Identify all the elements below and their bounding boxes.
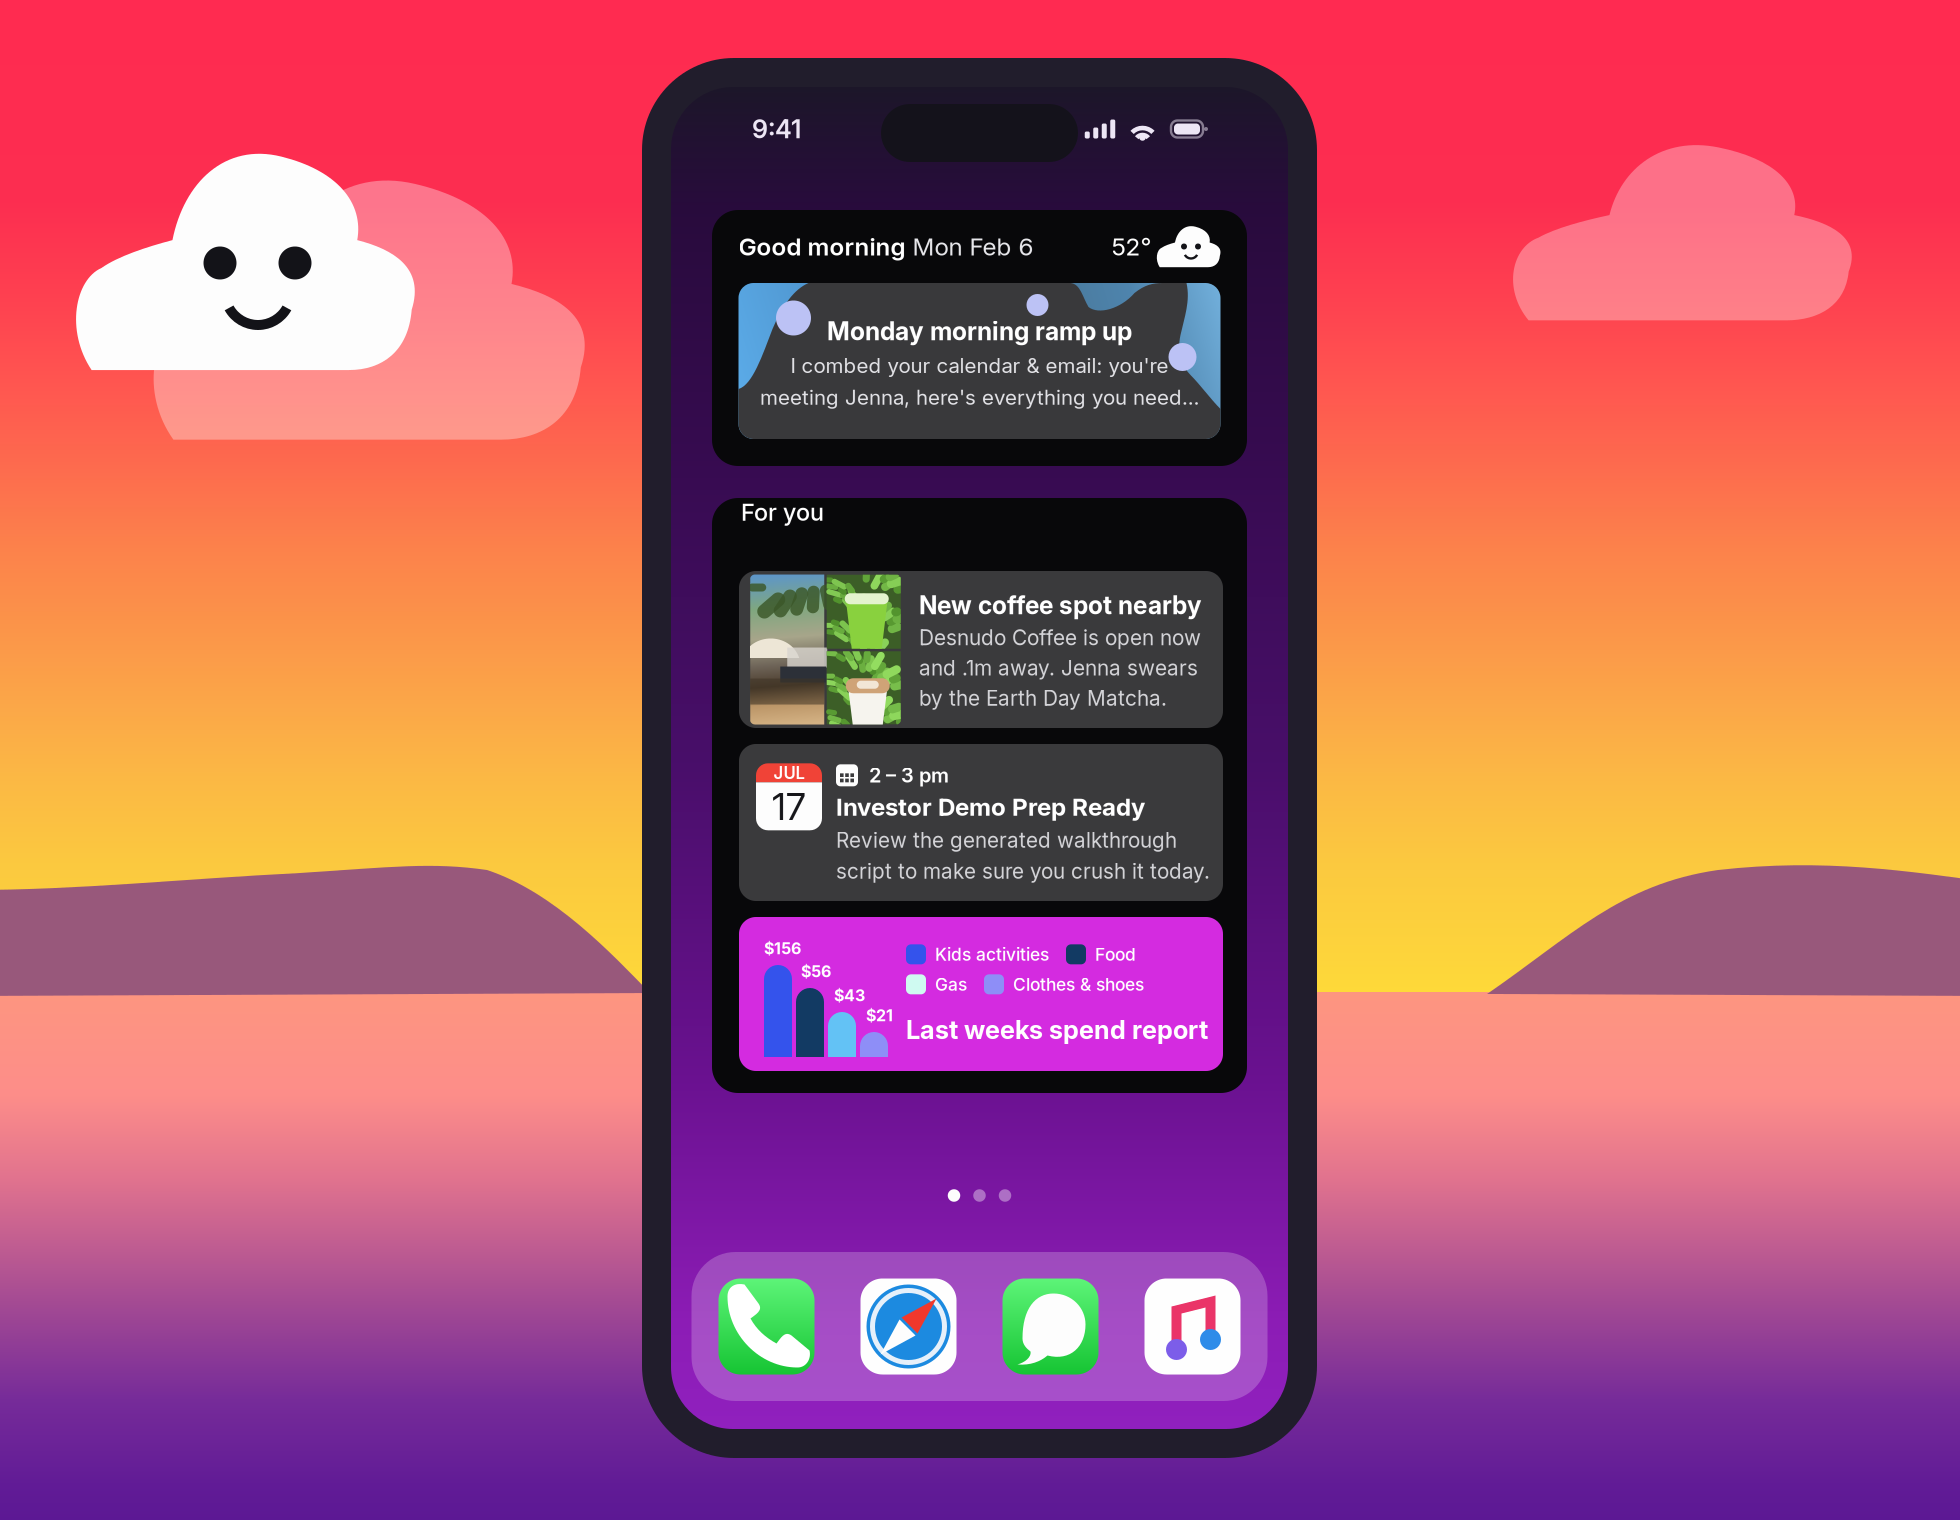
button[interactable]: New coffee spot nearby xyxy=(739,571,1223,728)
staticText: $21 xyxy=(866,1006,893,1025)
staticText: by the Earth Day Matcha. xyxy=(919,685,1167,711)
staticText: Good morning xyxy=(738,232,905,261)
staticText: $56 xyxy=(801,962,831,981)
staticText: 52° xyxy=(1111,232,1151,261)
button[interactable]: Good morning xyxy=(712,210,1247,466)
button[interactable]: Safari xyxy=(860,1278,956,1374)
staticText: $43 xyxy=(834,986,865,1005)
staticText: $156 xyxy=(764,939,801,958)
staticText: 9:41 xyxy=(752,114,801,144)
staticText: Gas xyxy=(935,974,967,995)
staticText: Clothes & shoes xyxy=(1013,974,1144,995)
staticText: and .1m away. Jenna swears xyxy=(919,655,1198,681)
staticText: Kids activities xyxy=(935,944,1049,965)
staticText: JUL xyxy=(773,763,804,783)
staticText: Review the generated walkthrough xyxy=(836,828,1177,853)
staticText: 17 xyxy=(772,784,806,829)
staticText: For you xyxy=(741,498,824,527)
staticText: Desnudo Coffee is open now xyxy=(919,625,1201,650)
staticText: script to make sure you crush it today. xyxy=(836,859,1210,884)
button[interactable]: Phone xyxy=(718,1278,814,1374)
staticText: meeting Jenna, here's everything you nee… xyxy=(760,385,1199,410)
button[interactable]: Music xyxy=(1144,1278,1240,1374)
staticText: Monday morning ramp up xyxy=(827,316,1132,346)
button[interactable]: Messages xyxy=(1002,1278,1098,1374)
staticText: Food xyxy=(1095,944,1136,965)
button[interactable]: JUL xyxy=(739,744,1223,901)
staticText: Last weeks spend report xyxy=(906,1014,1208,1045)
staticText: 2 – 3 pm xyxy=(869,763,949,787)
staticText: Investor Demo Prep Ready xyxy=(836,792,1145,822)
button[interactable]: $156 xyxy=(739,917,1223,1071)
staticText: New coffee spot nearby xyxy=(919,590,1201,620)
staticText: I combed your calendar & email: you're xyxy=(790,353,1168,378)
staticText: Mon Feb 6 xyxy=(905,232,1033,261)
